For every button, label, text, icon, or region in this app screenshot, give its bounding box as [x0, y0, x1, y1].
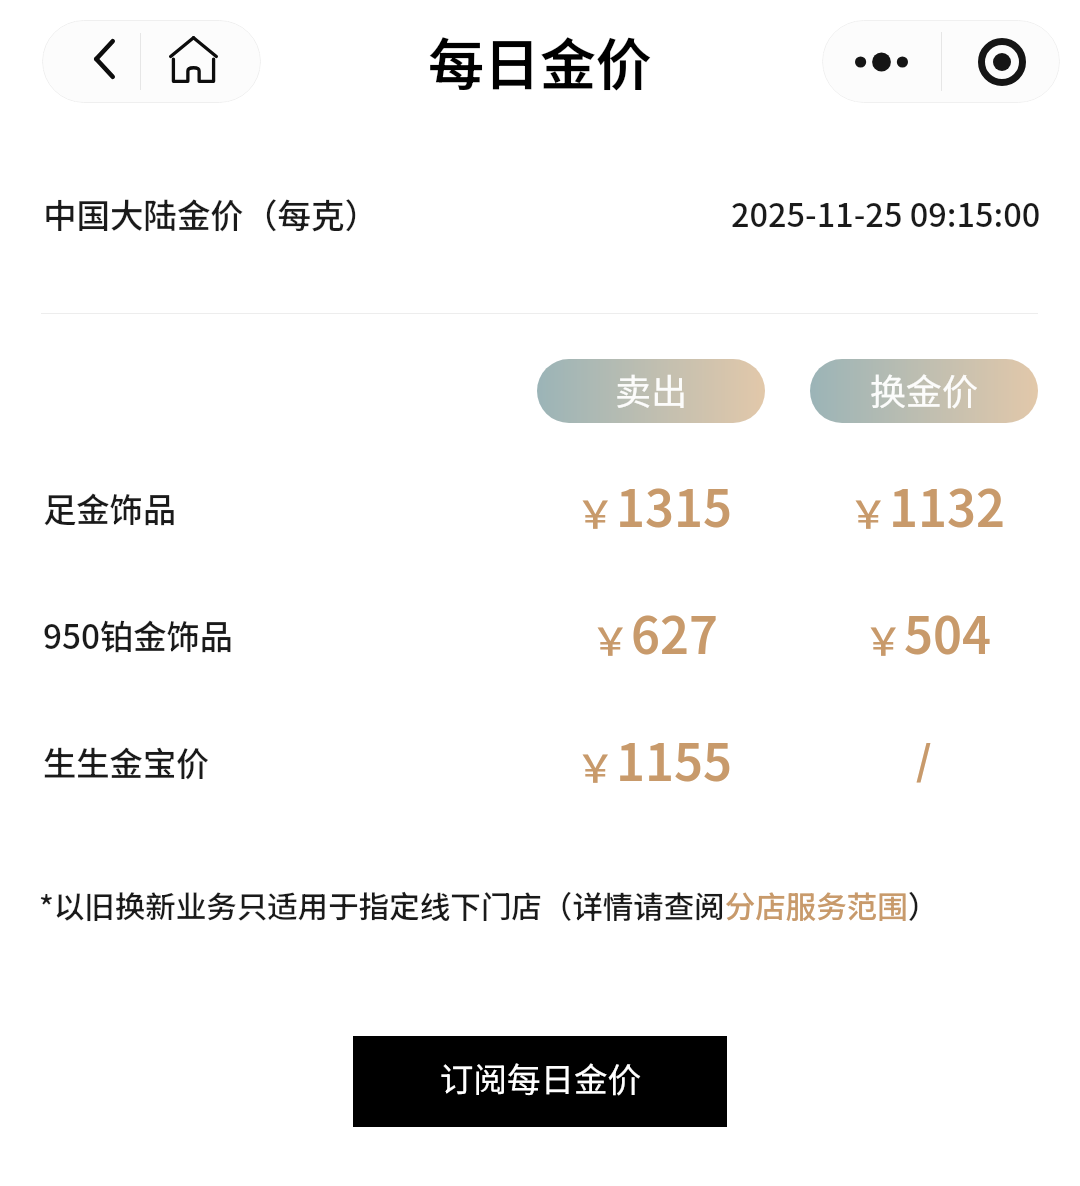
staticText: 504: [904, 596, 991, 668]
staticText: 换金价: [870, 363, 979, 415]
button[interactable]: Home: [141, 20, 261, 103]
button[interactable]: 950铂金饰品: [0, 592, 1080, 672]
staticText: 卖出: [615, 363, 688, 415]
staticText: ￥: [864, 611, 904, 667]
staticText: ￥: [591, 611, 631, 667]
button[interactable]: 换金价: [810, 359, 1038, 423]
staticText: 2025-11-25 09:15:00: [731, 189, 1041, 236]
staticText: 627: [631, 596, 718, 668]
staticText: ￥: [849, 484, 889, 540]
staticText: ￥: [576, 738, 616, 794]
staticText: /: [916, 729, 932, 787]
button[interactable]: 生生金宝价: [0, 719, 1080, 799]
button[interactable]: Back: [42, 20, 140, 103]
staticText: 每日金价: [428, 20, 652, 101]
button[interactable]: Close mini program: [943, 20, 1060, 103]
button[interactable]: 卖出: [537, 359, 765, 423]
staticText: 足金饰品: [43, 483, 177, 531]
button[interactable]: 订阅每日金价: [353, 1036, 727, 1127]
staticText: 生生金宝价: [43, 737, 210, 785]
button[interactable]: *以旧换新业务只适用于指定线下门店（详情请查阅分店服务范围）: [39, 883, 939, 927]
staticText: 1132: [889, 469, 1005, 541]
staticText: 1155: [616, 723, 732, 795]
button[interactable]: More options: [822, 20, 941, 103]
staticText: 1315: [616, 469, 732, 541]
staticText: 中国大陆金价（每克）: [43, 189, 378, 238]
staticText: 950铂金饰品: [43, 610, 234, 658]
button[interactable]: 足金饰品: [0, 465, 1080, 545]
staticText: 订阅每日金价: [440, 1053, 641, 1102]
staticText: ￥: [576, 484, 616, 540]
staticText: *以旧换新业务只适用于指定线下门店（详情请查阅分店服务范围）: [39, 883, 939, 927]
